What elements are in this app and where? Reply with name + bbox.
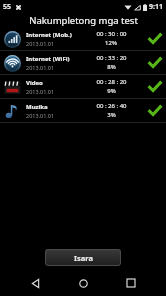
staticText: 9:11 — [149, 2, 163, 12]
staticText: 00 : 28 : 20 — [96, 78, 127, 86]
staticText: 2013.01.01 — [26, 64, 55, 71]
button[interactable]: Muzika — [0, 99, 166, 122]
other: Completed — [148, 104, 162, 118]
staticText: 00 : 26 : 40 — [96, 102, 127, 110]
staticText: Muzika — [26, 103, 48, 111]
button[interactable]: Internet (Mob.) — [0, 27, 166, 50]
button[interactable]: Internet (WiFi) — [0, 51, 166, 74]
staticText: 00 : 33 : 20 — [96, 54, 127, 62]
staticText: 12% — [105, 39, 117, 47]
staticText: Isara — [74, 253, 93, 263]
staticText: Video — [26, 79, 43, 87]
button[interactable]: Isara — [45, 249, 121, 266]
staticText: Nakumpletong mga test — [29, 14, 138, 27]
staticText: 2013.01.01 — [26, 112, 55, 119]
button[interactable]: Home — [70, 270, 96, 296]
button[interactable]: Video — [0, 75, 166, 98]
other: Completed — [148, 80, 162, 94]
staticText: 00 : 30 : 00 — [96, 30, 127, 38]
staticText: 55 — [3, 2, 12, 12]
button[interactable]: Back — [22, 270, 48, 296]
staticText: 8% — [107, 63, 116, 71]
staticText: Internet (Mob.) — [26, 31, 72, 39]
staticText: 3% — [107, 111, 116, 119]
staticText: 2013.01.01 — [26, 40, 55, 47]
staticText: Internet (WiFi) — [26, 55, 70, 63]
button[interactable]: Recents — [118, 270, 144, 296]
other: Completed — [148, 56, 162, 70]
other: Completed — [148, 32, 162, 46]
staticText: 9% — [107, 87, 116, 95]
staticText: 2013.01.01 — [26, 88, 55, 95]
